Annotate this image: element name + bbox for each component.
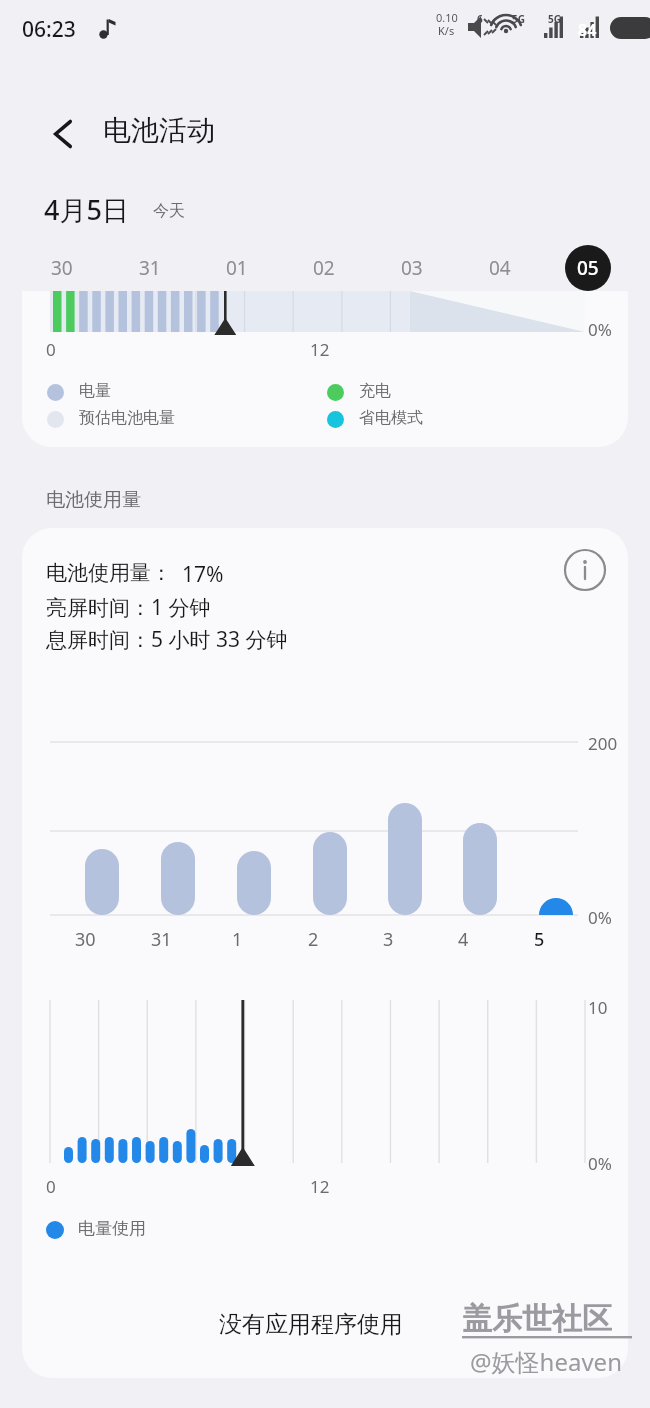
staticText: 30 bbox=[75, 927, 96, 952]
staticText: 02 bbox=[313, 255, 335, 281]
staticText: 0 bbox=[46, 338, 56, 361]
staticText: 10 bbox=[588, 996, 608, 1019]
staticText: 30 bbox=[51, 255, 73, 281]
button[interactable]: Info bbox=[562, 547, 608, 593]
staticText: 0% bbox=[588, 906, 612, 929]
staticText: 5 bbox=[534, 927, 545, 952]
button[interactable]: 04 bbox=[477, 245, 523, 291]
staticText: 5G bbox=[512, 12, 525, 26]
staticText: 12 bbox=[310, 1175, 330, 1198]
staticText: 电量使用 bbox=[78, 1218, 146, 1239]
staticText: 电池使用量： bbox=[46, 560, 172, 586]
staticText: 2 bbox=[308, 927, 319, 952]
staticText: 0.10 bbox=[436, 10, 458, 25]
staticText: 12 bbox=[310, 338, 330, 361]
staticText: 03 bbox=[401, 255, 423, 281]
staticText: @妖怪heaven bbox=[470, 1345, 622, 1378]
staticText: 0% bbox=[588, 1152, 612, 1175]
staticText: 200 bbox=[588, 732, 618, 755]
button[interactable]: 01 bbox=[214, 245, 260, 291]
staticText: 0 bbox=[46, 1175, 56, 1198]
staticText: 01 bbox=[226, 255, 248, 281]
staticText: 充电 bbox=[359, 381, 391, 401]
button[interactable] bbox=[565, 245, 611, 291]
staticText: K/s bbox=[438, 23, 455, 38]
staticText: 省电模式 bbox=[359, 408, 423, 428]
staticText: 盖乐世社区 bbox=[462, 1300, 612, 1338]
staticText: 1 bbox=[232, 927, 243, 952]
staticText: 0% bbox=[588, 318, 612, 341]
staticText: 预估电池电量 bbox=[79, 408, 175, 428]
staticText: 电量 bbox=[79, 381, 111, 401]
staticText: 06:23 bbox=[22, 15, 76, 44]
staticText: 17% bbox=[182, 560, 224, 589]
staticText: 4 bbox=[458, 927, 469, 952]
button[interactable] bbox=[22, 291, 628, 447]
staticText: 没有应用程序使用 bbox=[219, 1310, 403, 1339]
staticText: 电池使用量 bbox=[46, 488, 141, 512]
staticText: 电池活动 bbox=[103, 113, 215, 148]
button[interactable]: Back bbox=[38, 108, 90, 160]
button[interactable]: 31 bbox=[127, 245, 173, 291]
staticText: 84 bbox=[578, 19, 597, 41]
staticText: 亮屏时间：1 分钟 bbox=[46, 593, 211, 622]
button[interactable]: 05 bbox=[565, 245, 611, 291]
staticText: 4月5日 bbox=[44, 191, 129, 228]
staticText: 息屏时间：5 小时 33 分钟 bbox=[46, 625, 288, 654]
button[interactable]: 02 bbox=[301, 245, 347, 291]
staticText: 6 bbox=[477, 12, 483, 26]
staticText: 04 bbox=[489, 255, 511, 281]
staticText: 今天 bbox=[153, 201, 185, 221]
staticText: 3 bbox=[383, 927, 394, 952]
staticText: 31 bbox=[151, 927, 172, 952]
button[interactable]: 30 bbox=[39, 245, 85, 291]
staticText: 05 bbox=[577, 255, 599, 281]
staticText: 31 bbox=[139, 255, 161, 281]
button[interactable]: 03 bbox=[389, 245, 435, 291]
staticText: 5G bbox=[548, 12, 561, 26]
